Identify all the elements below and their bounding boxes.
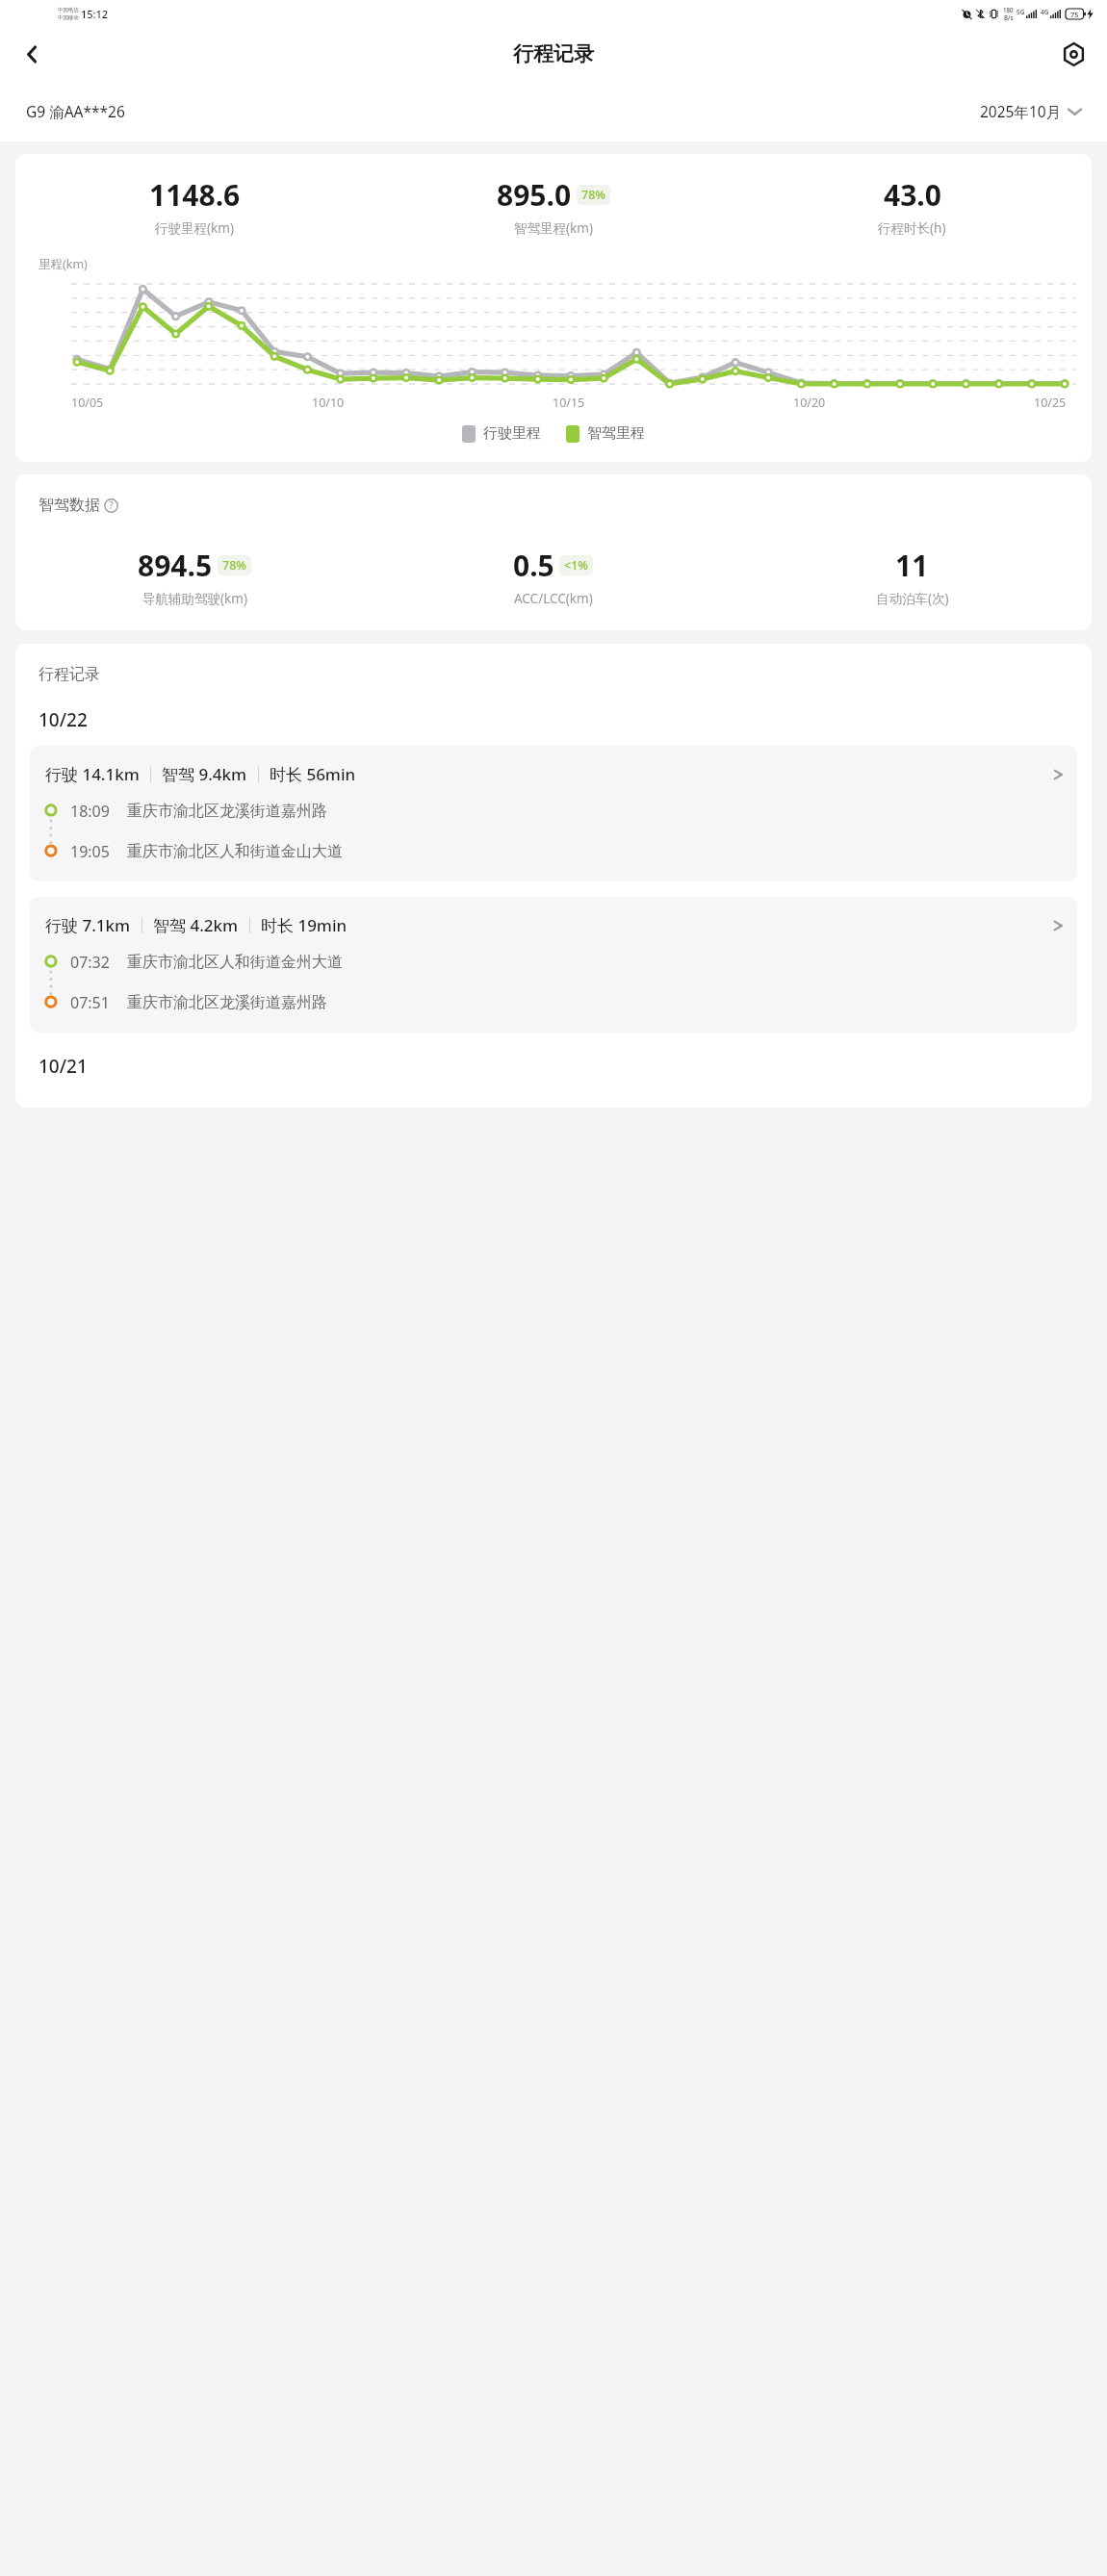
staticText: 2025年10月 (980, 101, 1062, 121)
staticText: 0.5 (513, 546, 554, 585)
staticText: G9 渝AA***26 (26, 101, 125, 121)
staticText: 智驾里程(km) (514, 219, 593, 237)
other: Help (104, 498, 118, 513)
staticText: B/s (1004, 13, 1014, 21)
staticText: 15:12 (81, 7, 109, 21)
staticText: 时长 19min (261, 914, 348, 936)
staticText: 1148.6 (149, 175, 241, 215)
staticText: 894.5 (138, 546, 213, 585)
staticText: ACC/LCC(km) (514, 590, 593, 607)
staticText: 895.0 (497, 175, 572, 215)
staticText: 中国移动 (58, 14, 79, 21)
staticText: 10/21 (39, 1054, 88, 1079)
button[interactable]: 2025年10月 (980, 95, 1081, 127)
staticText: 10/22 (39, 707, 88, 732)
staticText: 里程(km) (39, 256, 88, 272)
staticText: 07:51 (70, 992, 110, 1013)
staticText: 行驶里程 (483, 424, 541, 443)
staticText: 行程时长(h) (878, 219, 946, 237)
staticText: 重庆市渝北区龙溪街道嘉州路 (127, 802, 327, 821)
staticText: 78% (581, 187, 605, 203)
staticText: 11 (895, 546, 929, 585)
staticText: ? (104, 498, 118, 512)
staticText: 18:09 (70, 801, 110, 822)
staticText: 智驾 9.4km (162, 763, 247, 785)
staticText: 07:32 (70, 952, 110, 973)
staticText: 重庆市渝北区人和街道金山大道 (127, 842, 343, 861)
staticText: 10/25 (1034, 395, 1067, 411)
staticText: 中国电信 (58, 7, 79, 13)
staticText: 导航辅助驾驶(km) (142, 590, 247, 607)
staticText: 43.0 (884, 175, 941, 215)
button[interactable]: 行驶 7.1km (30, 897, 1077, 1033)
staticText: 行程记录 (513, 41, 594, 66)
staticText: 自动泊车(次) (876, 590, 949, 607)
staticText: 行程记录 (39, 665, 100, 684)
staticText: 时长 56min (270, 763, 356, 785)
staticText: 5G (1017, 8, 1025, 16)
staticText: 行驶 14.1km (45, 763, 140, 785)
staticText: 180 (1003, 6, 1014, 13)
staticText: 行驶里程(km) (155, 219, 234, 237)
staticText: 10/20 (793, 395, 826, 411)
button[interactable]: 行驶里程 (462, 424, 541, 443)
staticText: 智驾数据 (39, 496, 100, 515)
staticText: 行驶 7.1km (45, 914, 131, 936)
staticText: 智驾 4.2km (153, 914, 239, 936)
staticText: 重庆市渝北区人和街道金州大道 (127, 953, 343, 972)
staticText: <1% (564, 557, 588, 574)
button[interactable]: 智驾里程 (566, 424, 645, 443)
staticText: 75 (1070, 10, 1079, 19)
staticText: 4G (1041, 8, 1049, 16)
button[interactable]: Back (10, 32, 54, 76)
other: Open trip detail (1053, 917, 1064, 934)
button[interactable]: 智驾数据 (39, 496, 133, 515)
staticText: 智驾里程 (587, 424, 645, 443)
staticText: 10/05 (71, 395, 104, 411)
staticText: 78% (222, 557, 246, 574)
other: Open trip detail (1053, 766, 1064, 783)
button[interactable]: 行驶 14.1km (30, 746, 1077, 881)
staticText: 10/15 (553, 395, 585, 411)
button[interactable]: Settings (1051, 32, 1095, 76)
staticText: 10/10 (312, 395, 345, 411)
staticText: 19:05 (70, 841, 110, 862)
staticText: 重庆市渝北区龙溪街道嘉州路 (127, 993, 327, 1012)
